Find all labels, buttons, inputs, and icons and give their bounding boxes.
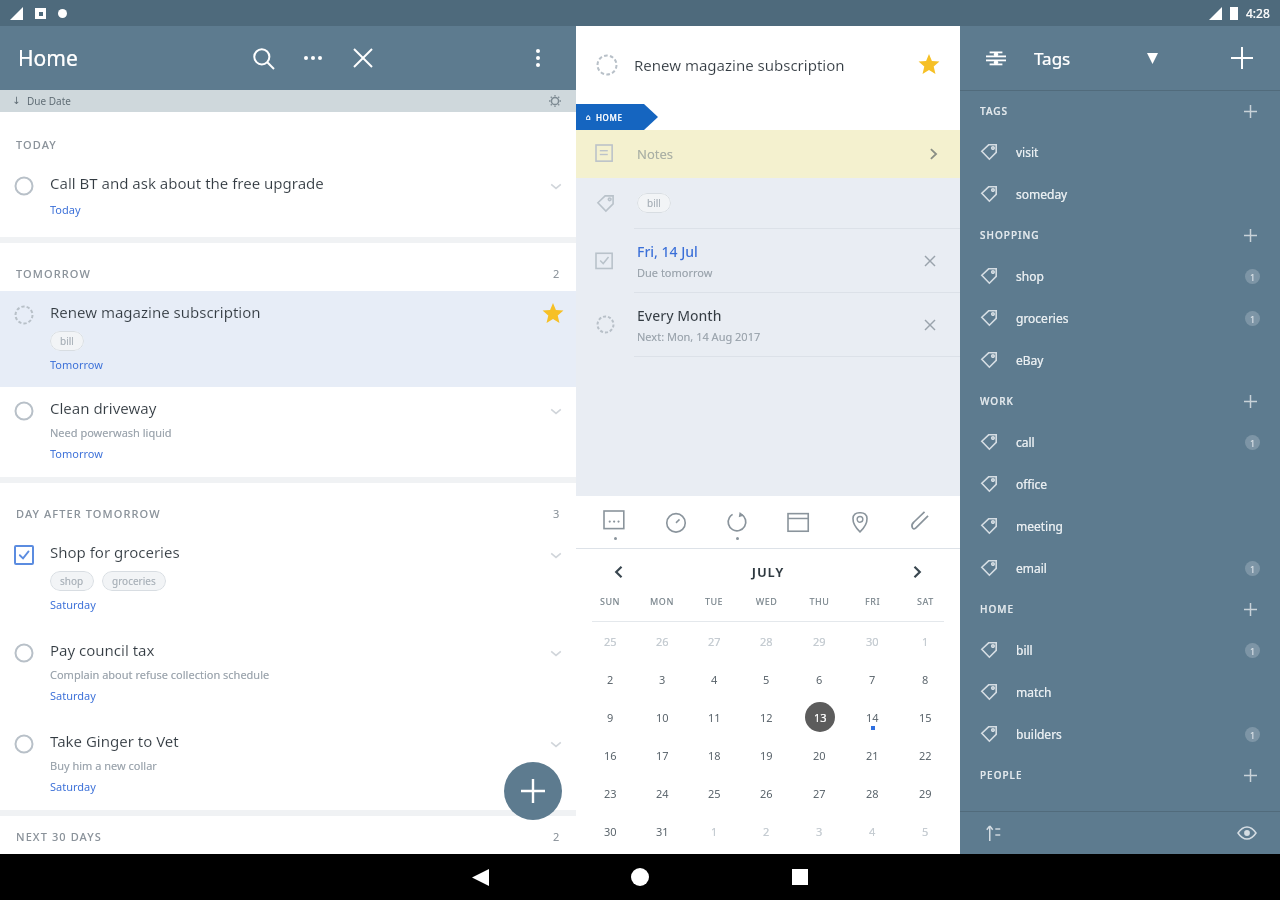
- button[interactable]: 29: [899, 774, 952, 812]
- button[interactable]: shop: [50, 571, 94, 591]
- button[interactable]: call: [960, 421, 1280, 463]
- button[interactable]: 4: [688, 660, 740, 698]
- button[interactable]: office: [960, 463, 1280, 505]
- button[interactable]: 18: [688, 736, 740, 774]
- button[interactable]: match: [960, 671, 1280, 713]
- button[interactable]: 1: [899, 622, 952, 660]
- button[interactable]: Take Ginger to Vet: [0, 720, 576, 810]
- button[interactable]: 19: [740, 736, 793, 774]
- button[interactable]: 27: [793, 774, 846, 812]
- button[interactable]: Shop for groceries: [0, 531, 576, 629]
- button[interactable]: 25: [584, 622, 636, 660]
- button[interactable]: groceries: [960, 297, 1280, 339]
- button[interactable]: Notes: [593, 500, 637, 544]
- button[interactable]: visit: [960, 131, 1280, 173]
- button[interactable]: Back: [450, 854, 510, 900]
- button[interactable]: 20: [793, 736, 846, 774]
- button[interactable]: 5: [740, 660, 793, 698]
- button[interactable]: 13: [793, 698, 846, 736]
- button[interactable]: 7: [846, 660, 899, 698]
- button[interactable]: 28: [846, 774, 899, 812]
- button[interactable]: More options: [292, 37, 334, 79]
- staticText: 26: [760, 786, 773, 801]
- button[interactable]: 24: [636, 774, 688, 812]
- button[interactable]: 31: [636, 812, 688, 850]
- button[interactable]: Previous month: [602, 555, 636, 589]
- button[interactable]: someday: [960, 173, 1280, 215]
- button[interactable]: shop: [960, 255, 1280, 297]
- button[interactable]: Filter: [546, 92, 564, 110]
- button[interactable]: Location: [838, 500, 882, 544]
- button[interactable]: 3: [636, 660, 688, 698]
- button[interactable]: 5: [899, 812, 952, 850]
- button[interactable]: 9: [584, 698, 636, 736]
- button[interactable]: bill: [50, 331, 84, 351]
- button[interactable]: Repeat: [715, 500, 759, 544]
- button[interactable]: 23: [584, 774, 636, 812]
- button[interactable]: 10: [636, 698, 688, 736]
- button[interactable]: Change view: [1134, 40, 1170, 76]
- button[interactable]: 15: [899, 698, 952, 736]
- button[interactable]: Every Month: [576, 293, 960, 356]
- button[interactable]: 26: [740, 774, 793, 812]
- button[interactable]: 21: [846, 736, 899, 774]
- button[interactable]: Sort tags: [980, 820, 1006, 846]
- button[interactable]: Sort: [976, 38, 1016, 78]
- button[interactable]: 28: [740, 622, 793, 660]
- button[interactable]: 16: [584, 736, 636, 774]
- button[interactable]: 2: [740, 812, 793, 850]
- button[interactable]: Add tag: [1220, 36, 1264, 80]
- button[interactable]: 2: [584, 660, 636, 698]
- button[interactable]: Add task: [504, 762, 562, 820]
- button[interactable]: 26: [636, 622, 688, 660]
- button[interactable]: Recent apps: [770, 854, 830, 900]
- button[interactable]: Renew magazine subscription: [0, 291, 576, 387]
- button[interactable]: Add TAGS: [1240, 101, 1260, 121]
- button[interactable]: 25: [688, 774, 740, 812]
- button[interactable]: Next month: [900, 555, 934, 589]
- button[interactable]: Search: [242, 37, 284, 79]
- button[interactable]: Pay council tax: [0, 629, 576, 720]
- button[interactable]: email: [960, 547, 1280, 589]
- button[interactable]: 30: [846, 622, 899, 660]
- button[interactable]: 11: [688, 698, 740, 736]
- staticText: 8: [922, 672, 929, 687]
- button[interactable]: Add HOME: [1240, 599, 1260, 619]
- button[interactable]: Home: [610, 854, 670, 900]
- button[interactable]: 6: [793, 660, 846, 698]
- button[interactable]: 22: [899, 736, 952, 774]
- button[interactable]: 17: [636, 736, 688, 774]
- button[interactable]: Remove due date: [920, 251, 940, 271]
- button[interactable]: 14: [846, 698, 899, 736]
- button[interactable]: 29: [793, 622, 846, 660]
- button[interactable]: bill: [637, 193, 671, 213]
- button[interactable]: builders: [960, 713, 1280, 755]
- button[interactable]: Due date: [777, 500, 821, 544]
- button[interactable]: eBay: [960, 339, 1280, 381]
- button[interactable]: Add SHOPPING: [1240, 225, 1260, 245]
- button[interactable]: bill: [960, 629, 1280, 671]
- button[interactable]: Remove repeat: [920, 315, 940, 335]
- button[interactable]: Toggle visibility: [1234, 820, 1260, 846]
- button[interactable]: 27: [688, 622, 740, 660]
- button[interactable]: 8: [899, 660, 952, 698]
- button[interactable]: Call BT and ask about the free upgrade: [0, 162, 576, 237]
- button[interactable]: Add PEOPLE: [1240, 765, 1260, 785]
- button[interactable]: 3: [793, 812, 846, 850]
- staticText: meeting: [1016, 518, 1260, 534]
- button[interactable]: Add WORK: [1240, 391, 1260, 411]
- button[interactable]: Reminder: [654, 500, 698, 544]
- button[interactable]: 12: [740, 698, 793, 736]
- button[interactable]: 4: [846, 812, 899, 850]
- button[interactable]: 1: [688, 812, 740, 850]
- button[interactable]: Clean driveway: [0, 387, 576, 477]
- button[interactable]: Notes: [576, 130, 960, 178]
- button[interactable]: 30: [584, 812, 636, 850]
- button[interactable]: Attachment: [899, 500, 943, 544]
- button[interactable]: Fri, 14 Jul: [576, 229, 960, 292]
- button[interactable]: groceries: [102, 571, 166, 591]
- button[interactable]: Overflow menu: [518, 38, 558, 78]
- button[interactable]: Close: [342, 37, 384, 79]
- button[interactable]: meeting: [960, 505, 1280, 547]
- button[interactable]: bill: [576, 178, 960, 228]
